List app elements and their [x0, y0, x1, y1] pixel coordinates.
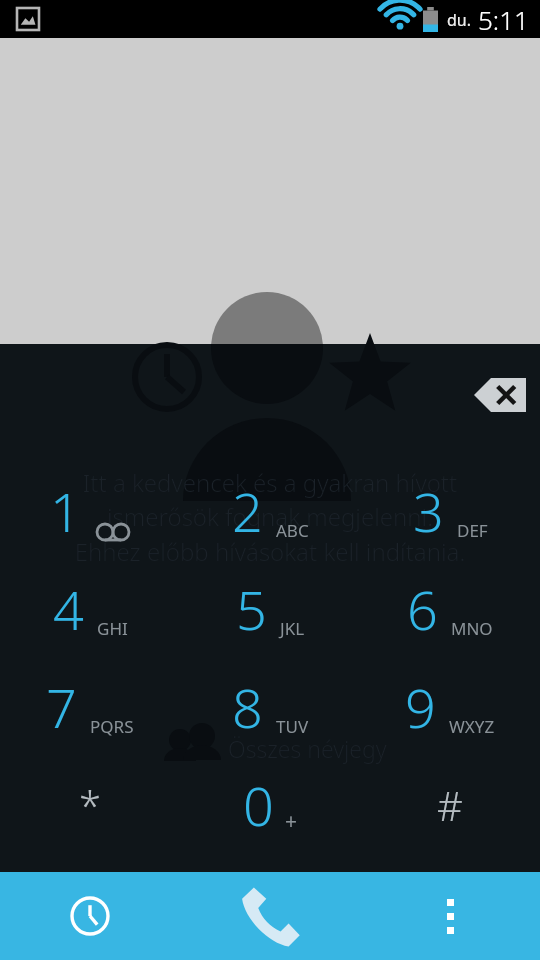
staticText: 1	[50, 474, 81, 548]
button[interactable]: 4	[0, 560, 180, 658]
button[interactable]: 7	[0, 658, 180, 756]
staticText: 3	[413, 474, 444, 548]
button[interactable]: 8	[180, 658, 360, 756]
staticText: 8	[232, 670, 263, 744]
button[interactable]: 3	[360, 462, 540, 560]
staticText: Itt a kedvencek és a gyakran hívott isme…	[18, 466, 522, 569]
staticText: TUV	[276, 715, 309, 738]
button[interactable]: #	[360, 756, 540, 854]
staticText: 4	[53, 572, 84, 646]
staticText: *	[79, 778, 102, 832]
staticText: 6	[407, 572, 438, 646]
button[interactable]: Recent calls	[0, 872, 180, 960]
button[interactable]: More options	[360, 872, 540, 960]
staticText: 5	[236, 572, 267, 646]
staticText: DEF	[457, 519, 488, 542]
staticText: #	[437, 778, 463, 832]
staticText: 7	[46, 670, 77, 744]
staticText: du.	[447, 9, 472, 31]
staticText: 9	[405, 670, 436, 744]
button[interactable]: 6	[360, 560, 540, 658]
button[interactable]: 2	[180, 462, 360, 560]
button[interactable]: Dialpad	[180, 872, 360, 960]
staticText: +	[285, 807, 298, 836]
button[interactable]: Backspace	[474, 378, 526, 412]
staticText: JKL	[280, 617, 305, 640]
button[interactable]: *	[0, 756, 180, 854]
button[interactable]: 9	[360, 658, 540, 756]
staticText: GHI	[97, 617, 128, 640]
staticText: ABC	[276, 519, 309, 542]
staticText: 2	[232, 474, 263, 548]
staticText: MNO	[451, 617, 493, 640]
staticText: 5:11	[478, 2, 529, 37]
staticText: Összes névjegy	[228, 733, 387, 764]
button[interactable]: 1	[0, 462, 180, 560]
button[interactable]: 5	[180, 560, 360, 658]
staticText: WXYZ	[449, 715, 495, 738]
button[interactable]: 0	[180, 756, 360, 854]
staticText: 0	[243, 768, 274, 842]
staticText: PQRS	[90, 715, 134, 738]
